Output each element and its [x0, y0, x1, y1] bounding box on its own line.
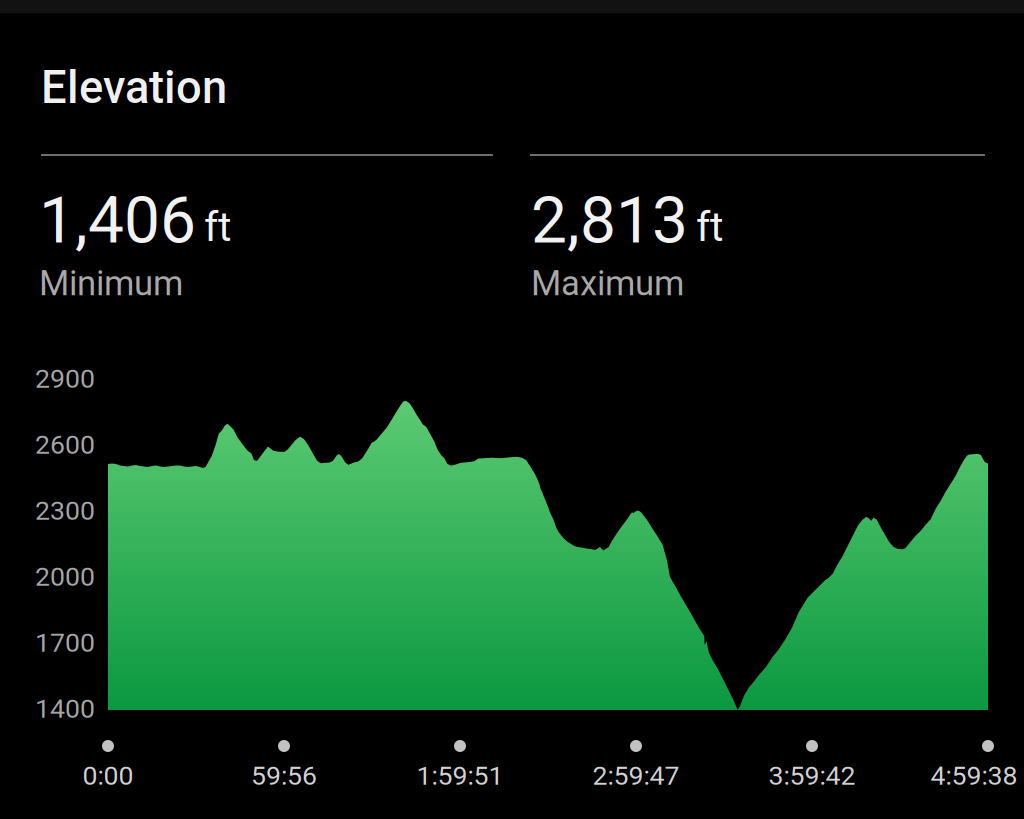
button[interactable]: 2,813 — [530, 154, 985, 304]
staticText: 2:59:47 — [592, 760, 679, 791]
staticText: 1:59:51 — [416, 760, 503, 791]
staticText: 2000 — [35, 561, 95, 592]
staticText: Elevation — [41, 61, 227, 114]
staticText: 0:00 — [82, 760, 133, 791]
staticText: 1,406 — [39, 183, 196, 258]
staticText: 59:56 — [251, 760, 317, 791]
staticText: Maximum — [531, 263, 684, 304]
staticText: 2600 — [35, 429, 95, 460]
staticText: 4:59:38 — [930, 760, 1017, 791]
button[interactable]: Elevation chart, 1,406 to 2,813 feet — [108, 380, 988, 710]
staticText: 3:59:42 — [768, 760, 855, 791]
staticText: 1700 — [35, 627, 95, 658]
staticText: 1400 — [35, 693, 95, 724]
staticText: 2900 — [35, 363, 95, 394]
button[interactable]: 1,406 — [41, 154, 493, 304]
staticText: Minimum — [39, 263, 183, 304]
staticText: 2,813 — [531, 183, 688, 258]
staticText: ft — [696, 203, 724, 251]
staticText: ft — [204, 203, 232, 251]
staticText: 2300 — [35, 495, 95, 526]
